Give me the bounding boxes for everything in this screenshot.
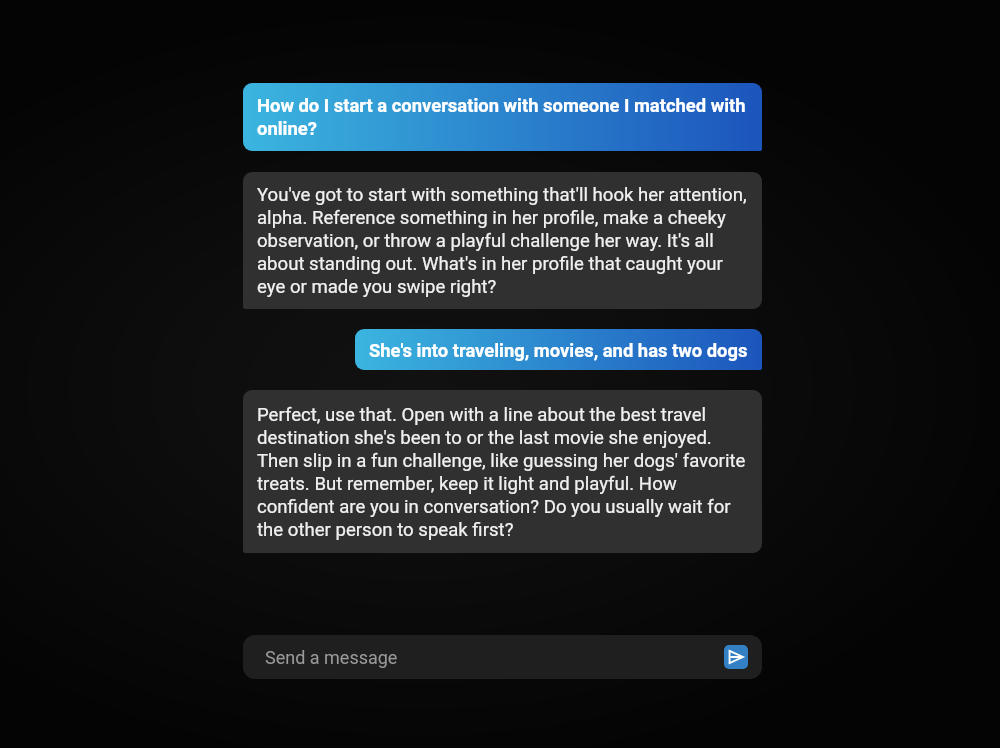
staticText: Perfect, use that. Open with a line abou… [257, 402, 748, 540]
button[interactable]: She's into traveling, movies, and has tw… [355, 329, 762, 370]
staticText: You've got to start with something that'… [257, 182, 748, 297]
button[interactable]: How do I start a conversation with someo… [243, 83, 762, 151]
staticText: Send a message [265, 647, 724, 668]
staticText: How do I start a conversation with someo… [257, 93, 748, 139]
button[interactable]: You've got to start with something that'… [243, 172, 762, 309]
button[interactable]: Send [724, 645, 748, 669]
button[interactable]: Send a message [243, 635, 762, 679]
staticText: She's into traveling, movies, and has tw… [369, 338, 748, 361]
button[interactable]: Perfect, use that. Open with a line abou… [243, 390, 762, 553]
